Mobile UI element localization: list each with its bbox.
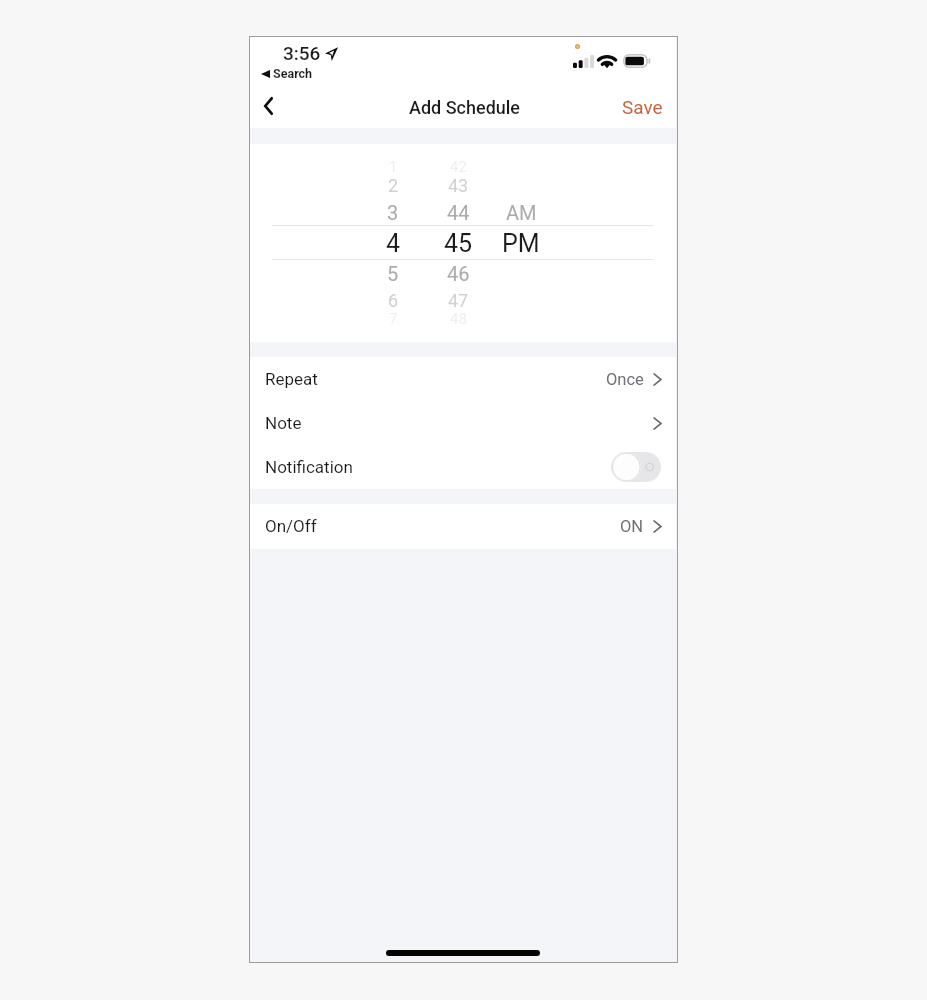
staticText: 43	[448, 175, 469, 196]
staticText: 48	[450, 310, 467, 328]
staticText: 3:56	[283, 42, 321, 64]
staticText: 3	[387, 201, 399, 224]
button[interactable]: AM	[471, 195, 571, 229]
button[interactable]: 7	[343, 302, 443, 336]
button[interactable]: Notification toggle	[611, 452, 661, 482]
staticText: Save	[622, 96, 663, 118]
button[interactable]: 42	[408, 150, 508, 184]
staticText: 42	[450, 158, 467, 176]
staticText: 46	[447, 262, 470, 285]
button[interactable]: 4	[343, 226, 443, 260]
button[interactable]: 1	[343, 150, 443, 184]
staticText: 47	[448, 290, 469, 311]
button[interactable]: Note	[250, 401, 676, 445]
staticText: Notification	[265, 457, 353, 477]
staticText: AM	[506, 201, 537, 224]
staticText: Once	[606, 370, 644, 389]
staticText: 45	[444, 229, 473, 258]
staticText: ON	[620, 517, 644, 536]
button[interactable]: 47	[408, 283, 508, 317]
button[interactable]: 46	[408, 256, 508, 290]
button[interactable]: 5	[343, 256, 443, 290]
staticText: On/Off	[265, 516, 317, 536]
button[interactable]: 48	[408, 302, 508, 336]
staticText: Add Schedule	[409, 97, 521, 118]
button[interactable]: 3	[343, 195, 443, 229]
button[interactable]: 43	[408, 168, 508, 202]
staticText: 6	[388, 290, 399, 311]
staticText: 1	[389, 158, 398, 176]
staticText: 2	[388, 175, 399, 196]
staticText: Search	[273, 66, 313, 81]
button[interactable]: 6	[343, 283, 443, 317]
button[interactable]: Repeat	[250, 357, 676, 401]
staticText: 7	[389, 310, 398, 328]
staticText: Note	[265, 413, 302, 433]
button[interactable]: Save	[606, 86, 676, 128]
button[interactable]: On/Off	[250, 504, 676, 548]
button[interactable]: Back	[250, 86, 293, 128]
button[interactable]: 45	[408, 226, 508, 260]
staticText: 5	[387, 262, 399, 285]
staticText: 44	[447, 201, 470, 224]
button[interactable]: 44	[408, 195, 508, 229]
button[interactable]: 2	[343, 168, 443, 202]
staticText: 4	[386, 229, 401, 258]
staticText: Repeat	[265, 369, 318, 389]
staticText: PM	[502, 229, 540, 258]
button[interactable]: PM	[471, 226, 571, 260]
